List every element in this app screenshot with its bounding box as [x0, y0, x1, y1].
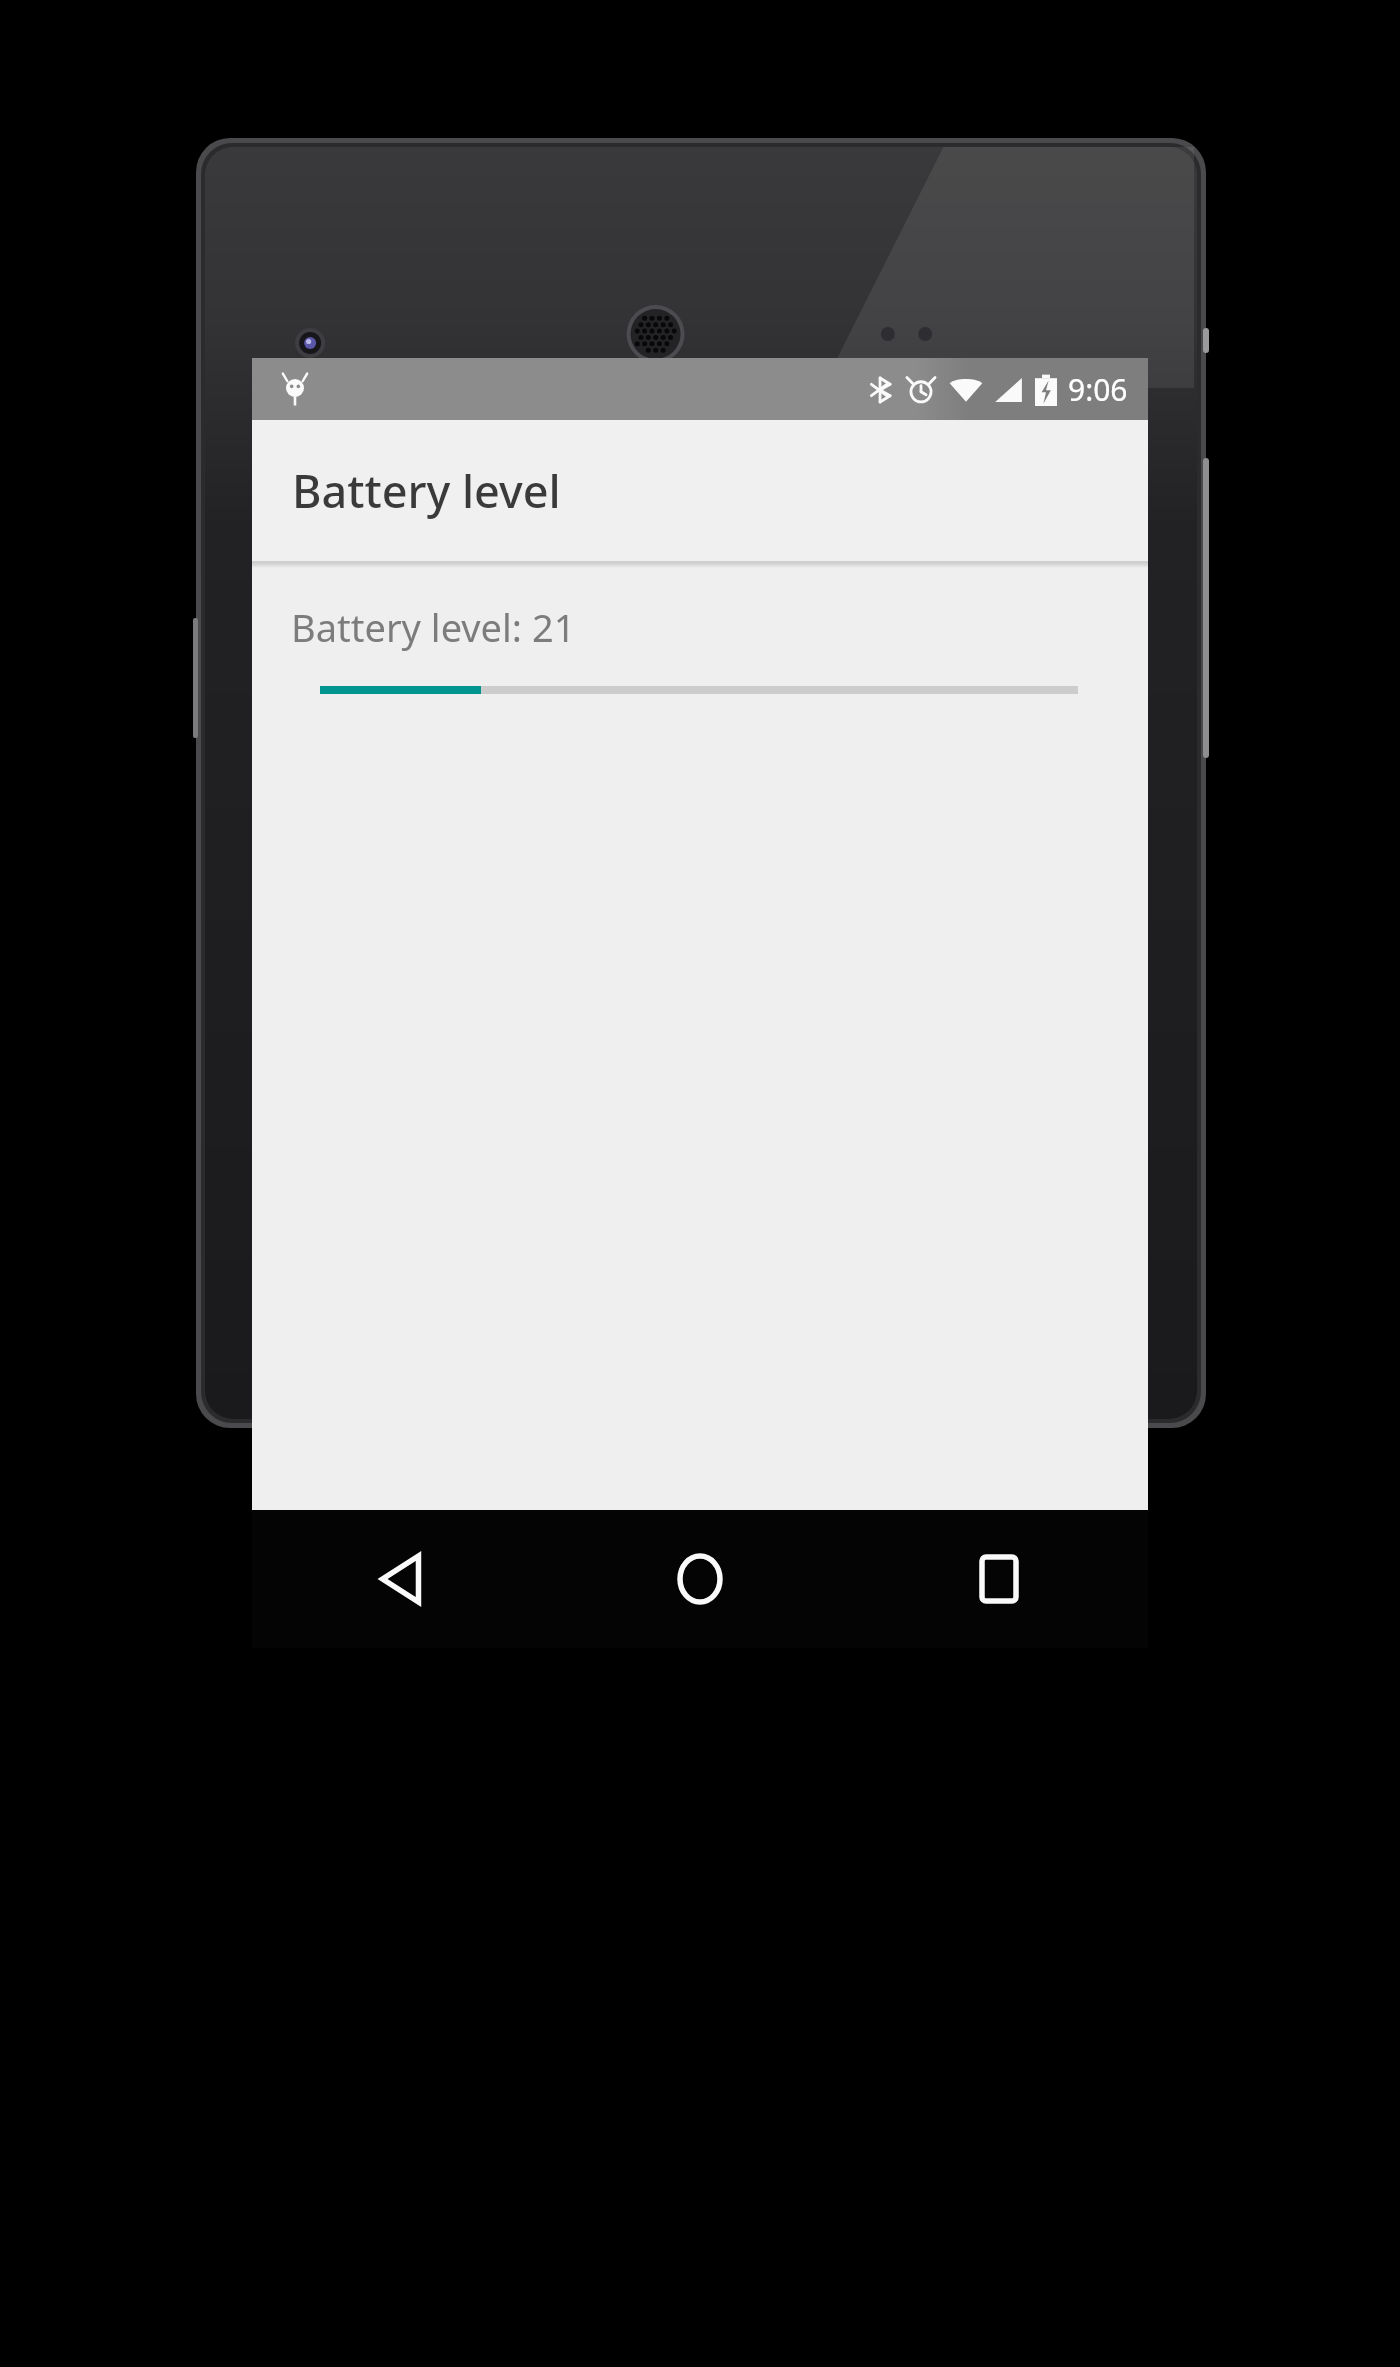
- button[interactable]: Home: [550, 1510, 849, 1648]
- staticText: Battery level: [292, 460, 561, 521]
- button[interactable]: Recent apps: [849, 1510, 1148, 1648]
- button[interactable]: Back: [252, 1510, 550, 1648]
- staticText: Battery level: 21: [291, 601, 576, 653]
- staticText: 9:06: [1068, 369, 1128, 410]
